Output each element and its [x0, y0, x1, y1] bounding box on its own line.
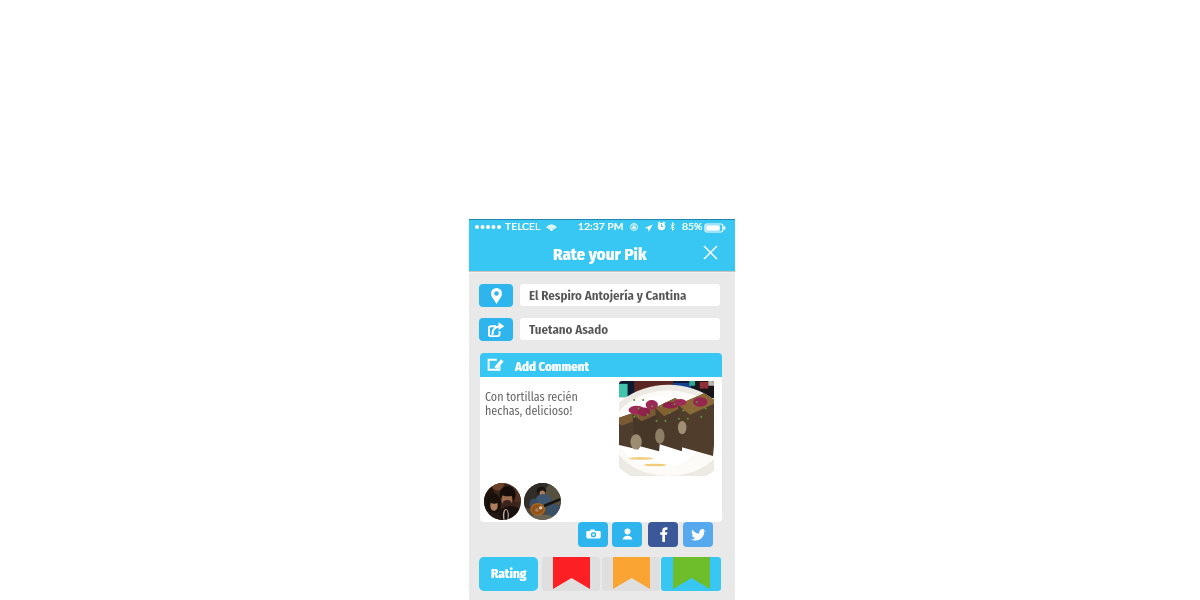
button[interactable]: Dish	[479, 318, 513, 341]
button[interactable]: Rate okay	[602, 557, 660, 591]
staticText: Rate your Pik	[553, 244, 647, 264]
staticText: El Respiro Antojería y Cantina	[529, 288, 687, 303]
staticText: 85%	[682, 220, 703, 232]
button[interactable]: Share on Facebook	[648, 522, 678, 547]
staticText: Rating	[491, 566, 527, 582]
button[interactable]: Share on Twitter	[683, 522, 713, 547]
button[interactable]: Rate bad	[542, 557, 600, 591]
staticText: TELCEL	[505, 220, 541, 232]
button[interactable]: Friends	[612, 522, 642, 547]
button[interactable]: Close	[699, 241, 722, 264]
staticText: Add Comment	[515, 359, 590, 374]
staticText: Con tortillas recién hechas, delicioso!	[485, 390, 578, 418]
button[interactable]: Add Comment	[480, 353, 722, 377]
staticText: Tuetano Asado	[529, 322, 609, 337]
button[interactable]: Location	[479, 284, 513, 307]
button[interactable]: Rate great	[661, 557, 721, 591]
button[interactable]: Tuetano Asado	[520, 318, 720, 340]
button[interactable]: Rating	[479, 557, 538, 591]
button[interactable]: El Respiro Antojería y Cantina	[520, 284, 720, 306]
button[interactable]: Camera	[578, 522, 608, 547]
staticText: 12:37 PM	[578, 220, 624, 232]
